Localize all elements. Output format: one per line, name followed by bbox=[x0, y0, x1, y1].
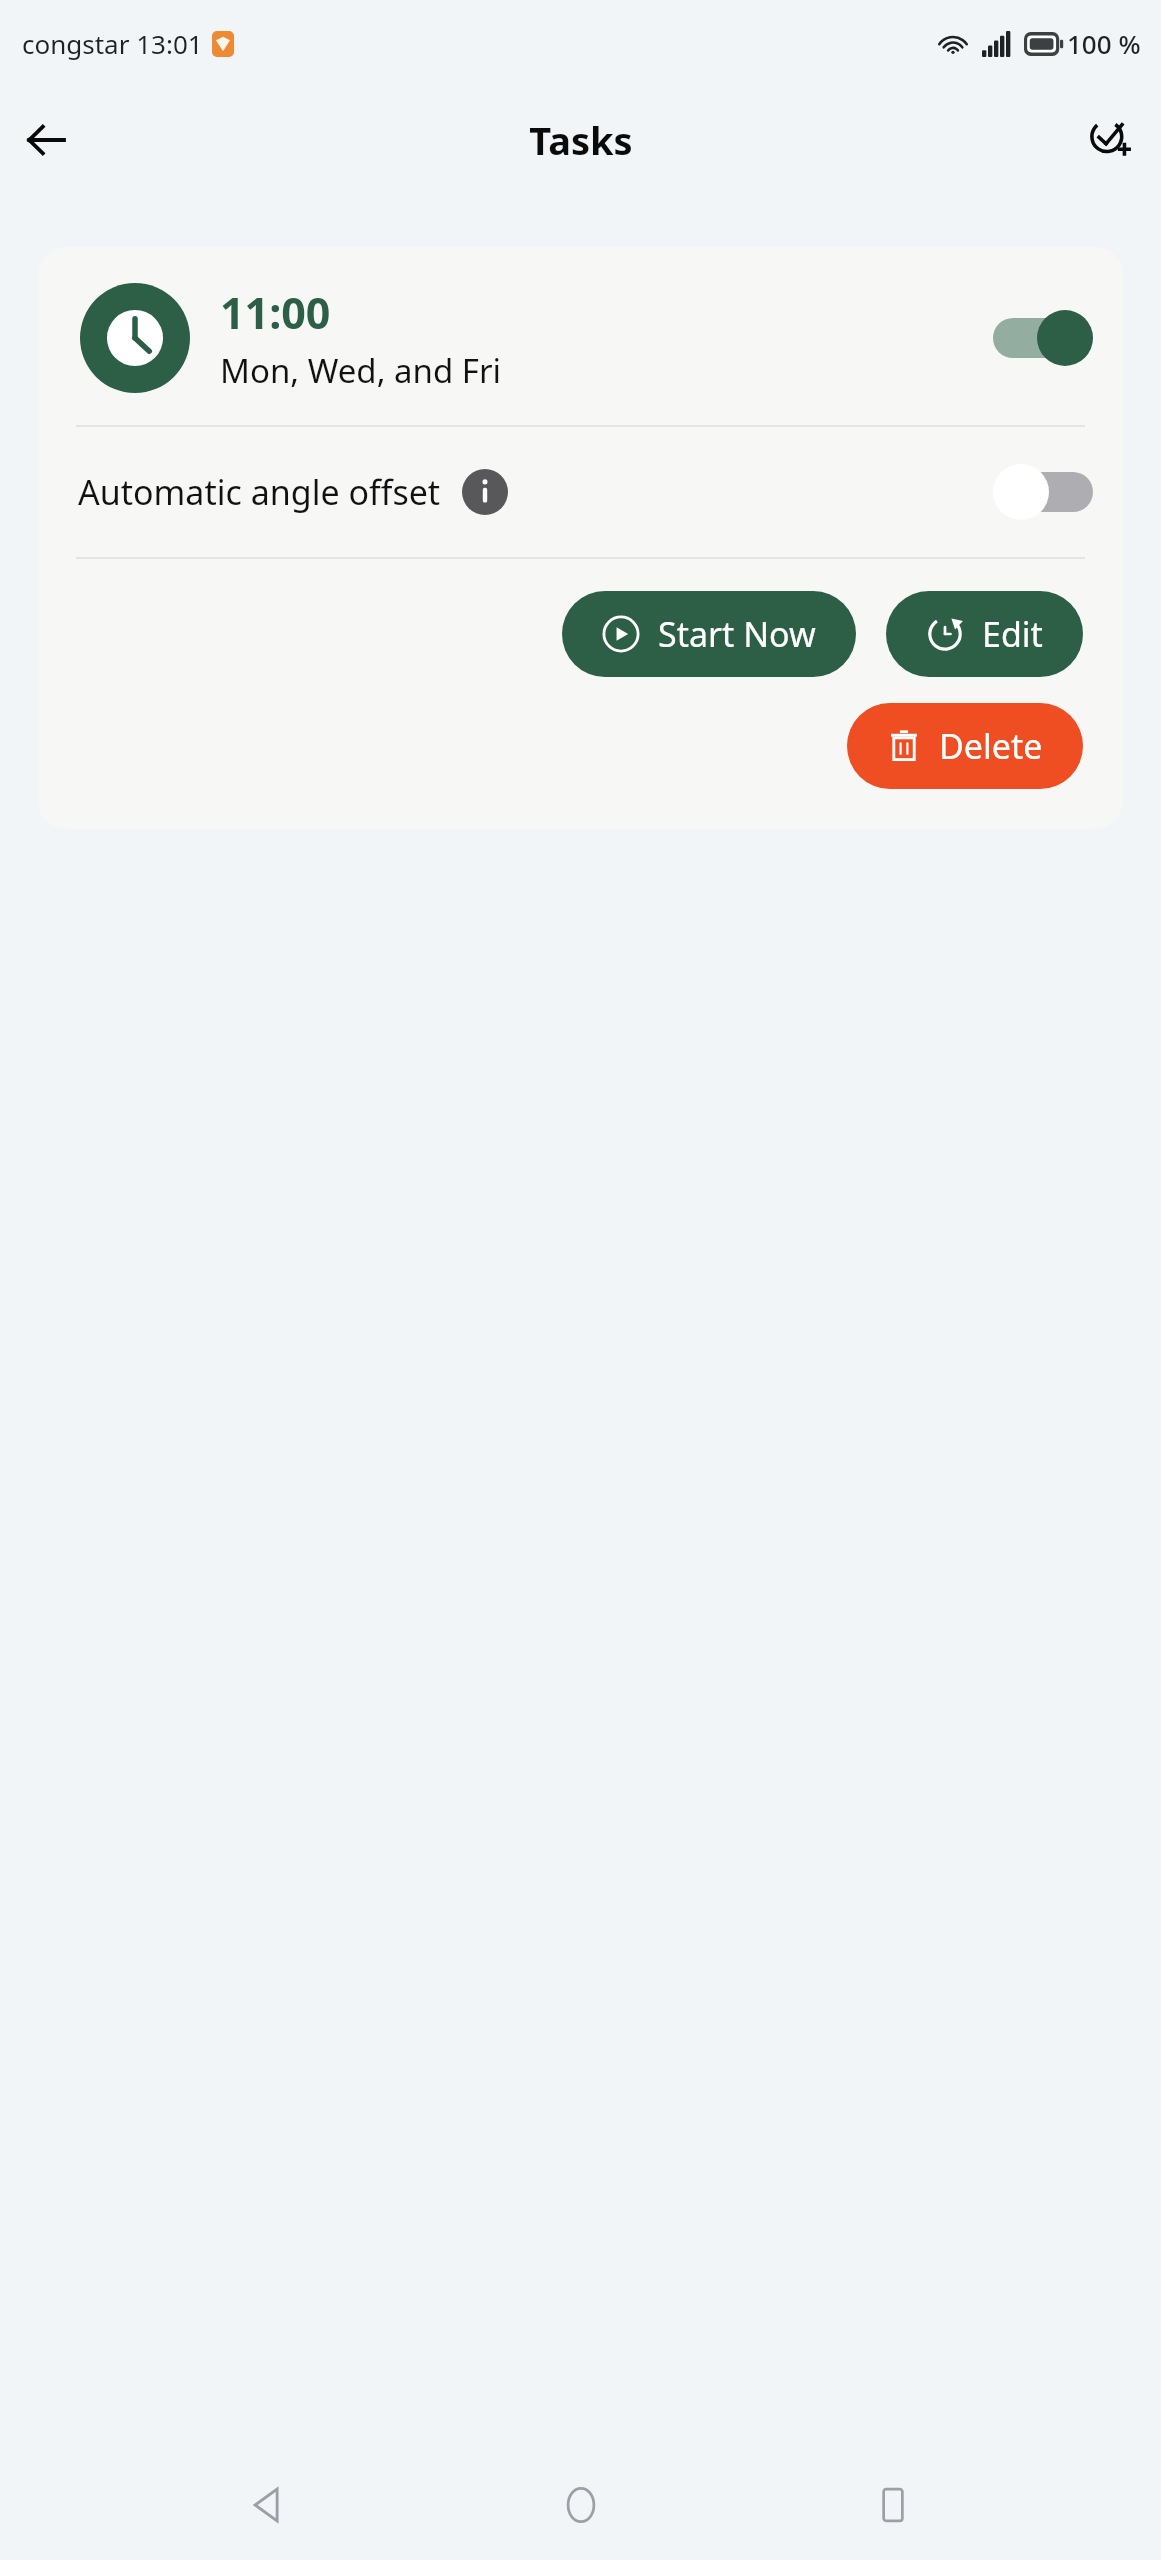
button[interactable]: Back bbox=[10, 104, 82, 176]
button[interactable]: Toggle off bbox=[993, 461, 1093, 523]
button[interactable]: Add task bbox=[1075, 104, 1147, 176]
button[interactable]: Toggle on bbox=[993, 307, 1093, 369]
button[interactable]: Start Now bbox=[562, 591, 856, 677]
button[interactable]: Back bbox=[223, 2460, 313, 2550]
staticText: 100 % bbox=[1067, 26, 1141, 61]
button[interactable]: Edit bbox=[886, 591, 1083, 677]
staticText: Mon, Wed, and Fri bbox=[220, 348, 502, 393]
button[interactable]: Home bbox=[536, 2460, 626, 2550]
button[interactable]: Delete bbox=[847, 703, 1083, 789]
staticText: Tasks bbox=[529, 114, 633, 166]
button[interactable]: Automatic angle offset bbox=[38, 427, 1123, 557]
staticText: Edit bbox=[982, 611, 1043, 657]
button[interactable]: Info bbox=[461, 468, 509, 516]
staticText: Automatic angle offset bbox=[78, 469, 441, 515]
staticText: Start Now bbox=[658, 611, 816, 657]
staticText: congstar 13:01 bbox=[22, 26, 203, 61]
staticText: 11:00 bbox=[220, 283, 331, 342]
button[interactable]: Recents bbox=[848, 2460, 938, 2550]
staticText: Delete bbox=[939, 723, 1043, 769]
button[interactable]: 11:00 bbox=[38, 247, 1123, 425]
